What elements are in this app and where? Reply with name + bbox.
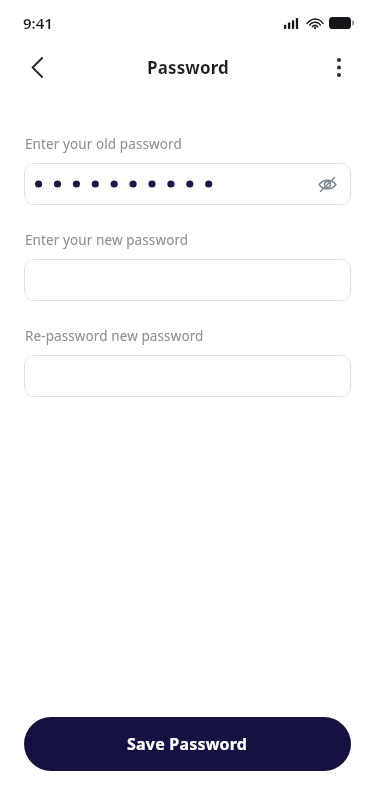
staticText: Save Password bbox=[127, 733, 248, 755]
staticText: 9:41 bbox=[23, 13, 53, 33]
button[interactable]: Back bbox=[16, 46, 58, 88]
button[interactable]: Hide password bbox=[24, 163, 351, 205]
staticText: Re-password new password bbox=[25, 327, 204, 345]
button[interactable] bbox=[24, 259, 351, 301]
button[interactable]: More options bbox=[319, 47, 359, 87]
staticText: Enter your old password bbox=[25, 135, 182, 153]
button[interactable]: Hide password bbox=[311, 168, 343, 200]
button[interactable]: Save Password bbox=[24, 717, 351, 771]
staticText: Password bbox=[147, 56, 229, 79]
staticText: Enter your new password bbox=[25, 231, 189, 249]
button[interactable] bbox=[24, 355, 351, 397]
